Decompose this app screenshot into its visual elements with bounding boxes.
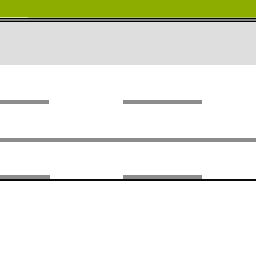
- button[interactable]: List item 1: [0, 65, 256, 104]
- button[interactable]: List item 2: [0, 104, 256, 142]
- button[interactable]: List item 3: [0, 142, 256, 182]
